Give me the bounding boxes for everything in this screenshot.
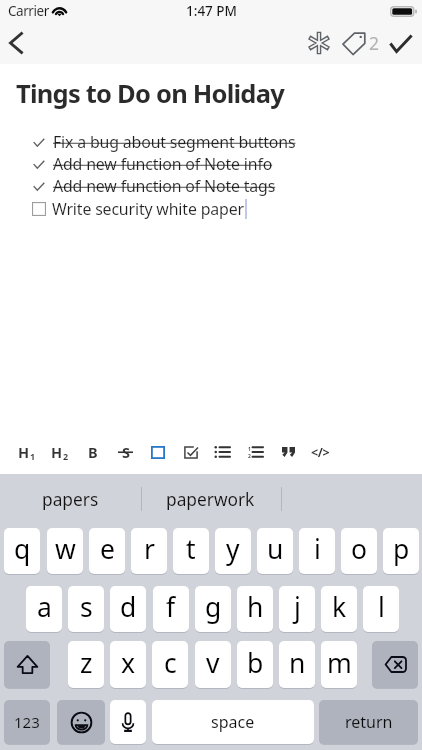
- staticText: 1: [30, 450, 36, 462]
- staticText: S: [122, 442, 130, 462]
- staticText: n: [289, 645, 306, 681]
- staticText: s: [80, 589, 93, 625]
- staticText: b: [247, 645, 264, 681]
- button[interactable]: v: [195, 641, 231, 688]
- button[interactable]: a: [26, 586, 62, 632]
- button[interactable]: Checkbox: [141, 434, 174, 470]
- staticText: Add new function of Note info: [53, 153, 273, 175]
- staticText: papers: [42, 488, 99, 512]
- staticText: r: [144, 531, 155, 567]
- button[interactable]: b: [237, 641, 273, 688]
- staticText: i: [314, 531, 321, 567]
- button[interactable]: d: [110, 586, 146, 632]
- staticText: Carrier: [8, 2, 49, 20]
- button[interactable]: Write security white paper: [0, 198, 422, 220]
- staticText: 2: [63, 450, 69, 462]
- button[interactable]: n: [279, 641, 315, 688]
- staticText: o: [351, 531, 368, 567]
- staticText: k: [332, 589, 347, 625]
- staticText: e: [100, 531, 115, 567]
- button[interactable]: Space: [152, 700, 314, 744]
- button[interactable]: Numbers: [4, 700, 50, 744]
- button[interactable]: l: [363, 586, 399, 632]
- button[interactable]: papers: [0, 474, 140, 514]
- staticText: return: [345, 711, 393, 733]
- staticText: d: [120, 589, 137, 625]
- button[interactable]: Bold: [76, 434, 109, 470]
- button[interactable]: Add new function of Note info: [0, 153, 422, 175]
- staticText: </>: [311, 444, 330, 461]
- staticText: Add new function of Note tags: [53, 175, 276, 197]
- button[interactable]: j: [279, 586, 315, 632]
- button[interactable]: Return: [319, 700, 418, 744]
- staticText: 1:47 PM: [186, 2, 237, 20]
- button[interactable]: Add new function of Note tags: [0, 175, 422, 197]
- button[interactable]: z: [68, 641, 104, 688]
- button[interactable]: p: [383, 528, 419, 574]
- button[interactable]: g: [195, 586, 231, 632]
- button[interactable]: Strikethrough: [109, 434, 142, 470]
- staticText: Tings to Do on Holiday: [16, 76, 284, 111]
- staticText: Write security white paper: [52, 198, 244, 220]
- staticText: v: [206, 645, 220, 681]
- staticText: g: [205, 589, 222, 625]
- button[interactable]: c: [152, 641, 188, 688]
- button[interactable]: x: [110, 641, 146, 688]
- button[interactable]: Checked checkbox: [174, 434, 207, 470]
- button[interactable]: Tags: [338, 22, 382, 64]
- staticText: 1: [248, 446, 251, 453]
- staticText: h: [247, 589, 264, 625]
- button[interactable]: r: [131, 528, 167, 574]
- button[interactable]: Shift: [4, 641, 50, 688]
- staticText: x: [121, 645, 136, 681]
- staticText: a: [37, 589, 52, 625]
- button[interactable]: y: [215, 528, 251, 574]
- button[interactable]: Emoji: [57, 700, 105, 744]
- button[interactable]: o: [341, 528, 377, 574]
- button[interactable]: t: [173, 528, 209, 574]
- button[interactable]: i: [299, 528, 335, 574]
- staticText: q: [14, 531, 31, 567]
- button[interactable]: m: [321, 641, 357, 688]
- button[interactable]: paperwork: [140, 474, 281, 514]
- staticText: m: [327, 645, 352, 681]
- button[interactable]: Back: [0, 22, 31, 64]
- button[interactable]: Code: [304, 434, 337, 470]
- button[interactable]: Heading 2: [43, 434, 76, 470]
- staticText: H: [51, 442, 63, 462]
- staticText: paperwork: [166, 488, 255, 512]
- button[interactable]: k: [321, 586, 357, 632]
- button[interactable]: s: [68, 586, 104, 632]
- button[interactable]: e: [89, 528, 125, 574]
- button[interactable]: Pin note: [300, 22, 337, 64]
- button[interactable]: h: [237, 586, 273, 632]
- staticText: j: [294, 589, 301, 625]
- staticText: z: [80, 645, 93, 681]
- staticText: 2: [248, 453, 251, 458]
- staticText: B: [88, 442, 98, 462]
- button[interactable]: Delete: [372, 641, 418, 688]
- staticText: f: [166, 589, 176, 625]
- staticText: w: [55, 531, 76, 567]
- staticText: l: [378, 589, 385, 625]
- button[interactable]: Heading 1: [10, 434, 43, 470]
- staticText: c: [164, 645, 177, 681]
- button[interactable]: Bulleted list: [206, 434, 239, 470]
- button[interactable]: q: [4, 528, 40, 574]
- button[interactable]: Done: [382, 22, 422, 64]
- button[interactable]: f: [153, 586, 189, 632]
- button[interactable]: w: [47, 528, 83, 574]
- staticText: p: [393, 531, 410, 567]
- staticText: space: [211, 711, 255, 733]
- staticText: u: [267, 531, 284, 567]
- staticText: 2: [369, 31, 380, 55]
- button[interactable]: Quote: [272, 434, 305, 470]
- button[interactable]: u: [257, 528, 293, 574]
- staticText: H: [18, 442, 30, 462]
- button[interactable]: Fix a bug about segment buttons: [0, 131, 422, 153]
- staticText: Fix a bug about segment buttons: [53, 131, 296, 153]
- button[interactable]: Dictate: [110, 700, 146, 744]
- button[interactable]: Numbered list: [239, 434, 272, 470]
- staticText: 123: [14, 712, 40, 732]
